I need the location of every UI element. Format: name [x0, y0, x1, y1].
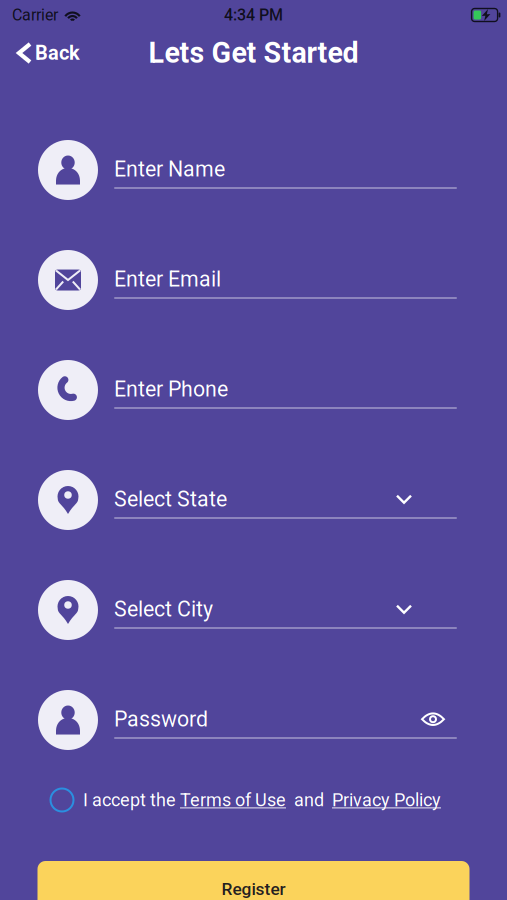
button[interactable]: Back [0, 31, 90, 75]
staticText: I accept the [83, 789, 180, 811]
staticText: Select State [114, 487, 227, 512]
staticText: Carrier [12, 6, 58, 24]
staticText: Privacy Policy [332, 789, 441, 811]
button[interactable]: Terms of Use [180, 789, 286, 811]
staticText: Enter Name [114, 157, 225, 182]
staticText: Register [221, 879, 285, 899]
staticText: Enter Phone [114, 377, 228, 402]
staticText: Enter Email [114, 267, 221, 292]
button[interactable]: Register [37, 861, 469, 900]
staticText: Select City [114, 597, 213, 622]
staticText: Back [35, 41, 80, 65]
staticText: Password [114, 707, 208, 732]
button[interactable]: Privacy Policy [332, 789, 441, 811]
staticText: Lets Get Started [148, 36, 358, 70]
button[interactable]: Accept terms and conditions [45, 783, 79, 817]
staticText: Terms of Use [180, 789, 286, 811]
staticText: and [286, 789, 332, 811]
staticText: 4:34 PM [224, 6, 283, 24]
